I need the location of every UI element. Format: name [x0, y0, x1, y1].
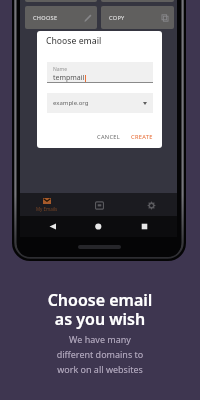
button[interactable]: example.org: [47, 93, 153, 113]
button[interactable]: My Emails: [20, 193, 73, 217]
staticText: CREATE: [131, 133, 153, 141]
staticText: Name: [53, 66, 68, 73]
staticText: CANCEL: [97, 133, 121, 141]
staticText: example.org: [53, 99, 89, 107]
button[interactable]: COPY: [25, 0, 97, 2]
staticText: Choose email as you wish: [0, 289, 200, 330]
button[interactable]: CHOOSE: [25, 6, 97, 29]
button[interactable]: CREATE: [127, 130, 156, 143]
staticText: COPY: [109, 14, 125, 22]
button[interactable]: Settings: [125, 193, 177, 217]
button[interactable]: COPY: [101, 6, 174, 29]
staticText: Choose email: [46, 35, 102, 47]
button[interactable]: REFRESH: [101, 0, 174, 2]
button[interactable]: Inbox: [73, 193, 125, 217]
staticText: tempmail: [53, 73, 85, 83]
staticText: My Emails: [36, 206, 58, 212]
staticText: We have many different domains to work o…: [0, 333, 200, 375]
staticText: CHOOSE: [33, 14, 58, 22]
button[interactable]: CANCEL: [94, 130, 123, 143]
